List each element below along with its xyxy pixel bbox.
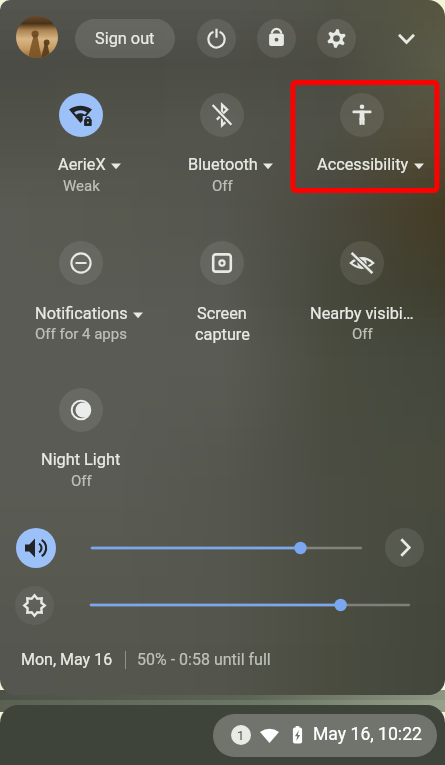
button[interactable]: Audio settings <box>385 528 424 567</box>
staticText: Night Light <box>41 450 121 469</box>
button[interactable]: Accessibility <box>292 89 433 201</box>
staticText: 50% - 0:58 until full <box>137 650 271 669</box>
button[interactable]: Notifications <box>11 237 152 349</box>
button[interactable]: Brightness <box>15 586 54 625</box>
button[interactable]: Sign out <box>75 19 175 58</box>
staticText: 1 <box>237 728 245 743</box>
button[interactable]: Volume slider <box>86 538 361 558</box>
staticText: capture <box>195 325 250 344</box>
staticText: AerieX <box>58 155 106 174</box>
button[interactable]: Status area <box>213 714 437 757</box>
button[interactable]: Night Light <box>11 384 152 496</box>
staticText: Bluetooth <box>188 155 258 174</box>
button[interactable]: Volume <box>16 528 56 568</box>
button[interactable]: Lock screen <box>257 19 296 58</box>
button[interactable]: Screen <box>152 237 293 349</box>
staticText: Sign out <box>95 29 155 48</box>
staticText: Notifications <box>35 304 128 323</box>
button[interactable]: Nearby visibi… <box>292 237 433 349</box>
button[interactable]: AerieX <box>11 89 152 201</box>
button[interactable]: Collapse <box>387 19 426 58</box>
staticText: Nearby visibi… <box>310 304 414 323</box>
staticText: Off <box>71 472 92 490</box>
staticText: Mon, May 16 <box>21 650 113 669</box>
staticText: Off <box>212 177 233 195</box>
staticText: Off for 4 apps <box>35 325 127 343</box>
staticText: Off <box>352 325 373 343</box>
staticText: Accessibility <box>317 155 409 174</box>
staticText: May 16, 10:22 <box>313 724 422 745</box>
button[interactable]: Account <box>16 16 58 58</box>
staticText: Screen <box>197 304 247 323</box>
button[interactable]: Settings <box>317 19 356 58</box>
button[interactable]: Power <box>197 19 236 58</box>
button[interactable]: Bluetooth <box>152 89 293 201</box>
staticText: Weak <box>63 177 100 195</box>
button[interactable]: Brightness slider <box>85 595 415 615</box>
